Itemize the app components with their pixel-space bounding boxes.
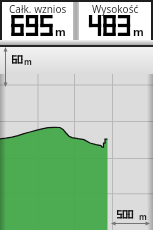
button[interactable]: Wysokość [79,2,151,40]
staticText: m [133,24,144,39]
button[interactable]: Całk. wznios [2,2,73,40]
staticText: m [139,211,147,222]
staticText: Całk. wznios [9,2,67,16]
staticText: m [24,56,32,67]
staticText: Wysokość [92,2,139,16]
staticText: m [55,24,66,39]
